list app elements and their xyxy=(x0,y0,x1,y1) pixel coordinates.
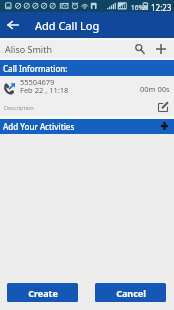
staticText: 12:23 xyxy=(151,2,172,13)
staticText: Description xyxy=(4,104,34,111)
staticText: 55504679 xyxy=(20,77,55,87)
button[interactable]: 55504679 xyxy=(0,76,174,97)
staticText: Feb 22 , 11:18 xyxy=(20,85,69,95)
button[interactable]: Create xyxy=(7,283,78,302)
staticText: Create xyxy=(28,287,58,299)
button[interactable]: Edit description xyxy=(155,99,171,115)
staticText: 00m 00s xyxy=(140,84,170,94)
button[interactable]: Back xyxy=(0,12,26,38)
button[interactable]: Cancel xyxy=(95,283,166,302)
staticText: Call Information: xyxy=(3,63,68,74)
staticText: 16% xyxy=(131,3,144,12)
button[interactable]: Add activity xyxy=(157,119,171,133)
button[interactable]: Add Your Activities xyxy=(0,119,174,134)
staticText: Cancel xyxy=(116,287,146,299)
button[interactable]: Search xyxy=(131,40,149,58)
button[interactable]: Add xyxy=(152,40,170,58)
staticText: Aliso Smith xyxy=(5,43,52,55)
staticText: Add Call Log xyxy=(35,18,100,33)
staticText: Add Your Activities xyxy=(3,121,75,132)
